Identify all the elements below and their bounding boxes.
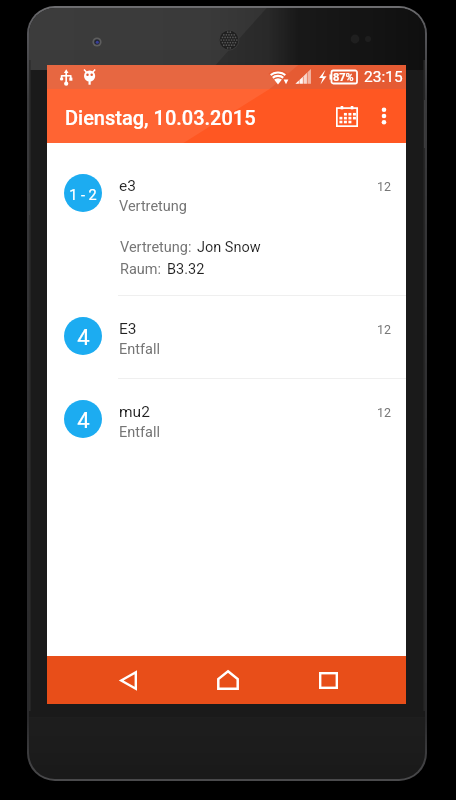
staticText: Entfall [119, 424, 160, 441]
staticText: mu2 [119, 403, 150, 421]
button[interactable]: Calendar [323, 89, 371, 143]
staticText: Raum: [120, 261, 162, 278]
button[interactable]: Home [194, 656, 262, 704]
staticText: e3 [119, 177, 136, 195]
button[interactable]: 4 [47, 296, 406, 379]
staticText: 1 - 2 [69, 187, 97, 204]
staticText: B3.32 [167, 261, 205, 278]
staticText: 23:15 [364, 68, 403, 86]
staticText: 12 [377, 179, 392, 194]
staticText: 4 [77, 408, 90, 434]
staticText: 12 [377, 405, 392, 420]
staticText: 4 [77, 325, 90, 351]
button[interactable]: 4 [47, 379, 406, 461]
staticText: Entfall [119, 341, 160, 358]
staticText: E3 [119, 320, 137, 338]
staticText: Jon Snow [197, 239, 261, 256]
button[interactable]: Back [94, 656, 162, 704]
staticText: Vertretung [119, 198, 187, 215]
staticText: 87% [333, 71, 354, 84]
staticText: Vertretung: [120, 239, 192, 256]
staticText: Dienstag, 10.03.2015 [65, 106, 256, 129]
button[interactable]: 1 - 2 [47, 151, 406, 296]
button[interactable]: Recent apps [294, 656, 362, 704]
staticText: 12 [377, 322, 392, 337]
button[interactable]: More options [361, 89, 406, 143]
